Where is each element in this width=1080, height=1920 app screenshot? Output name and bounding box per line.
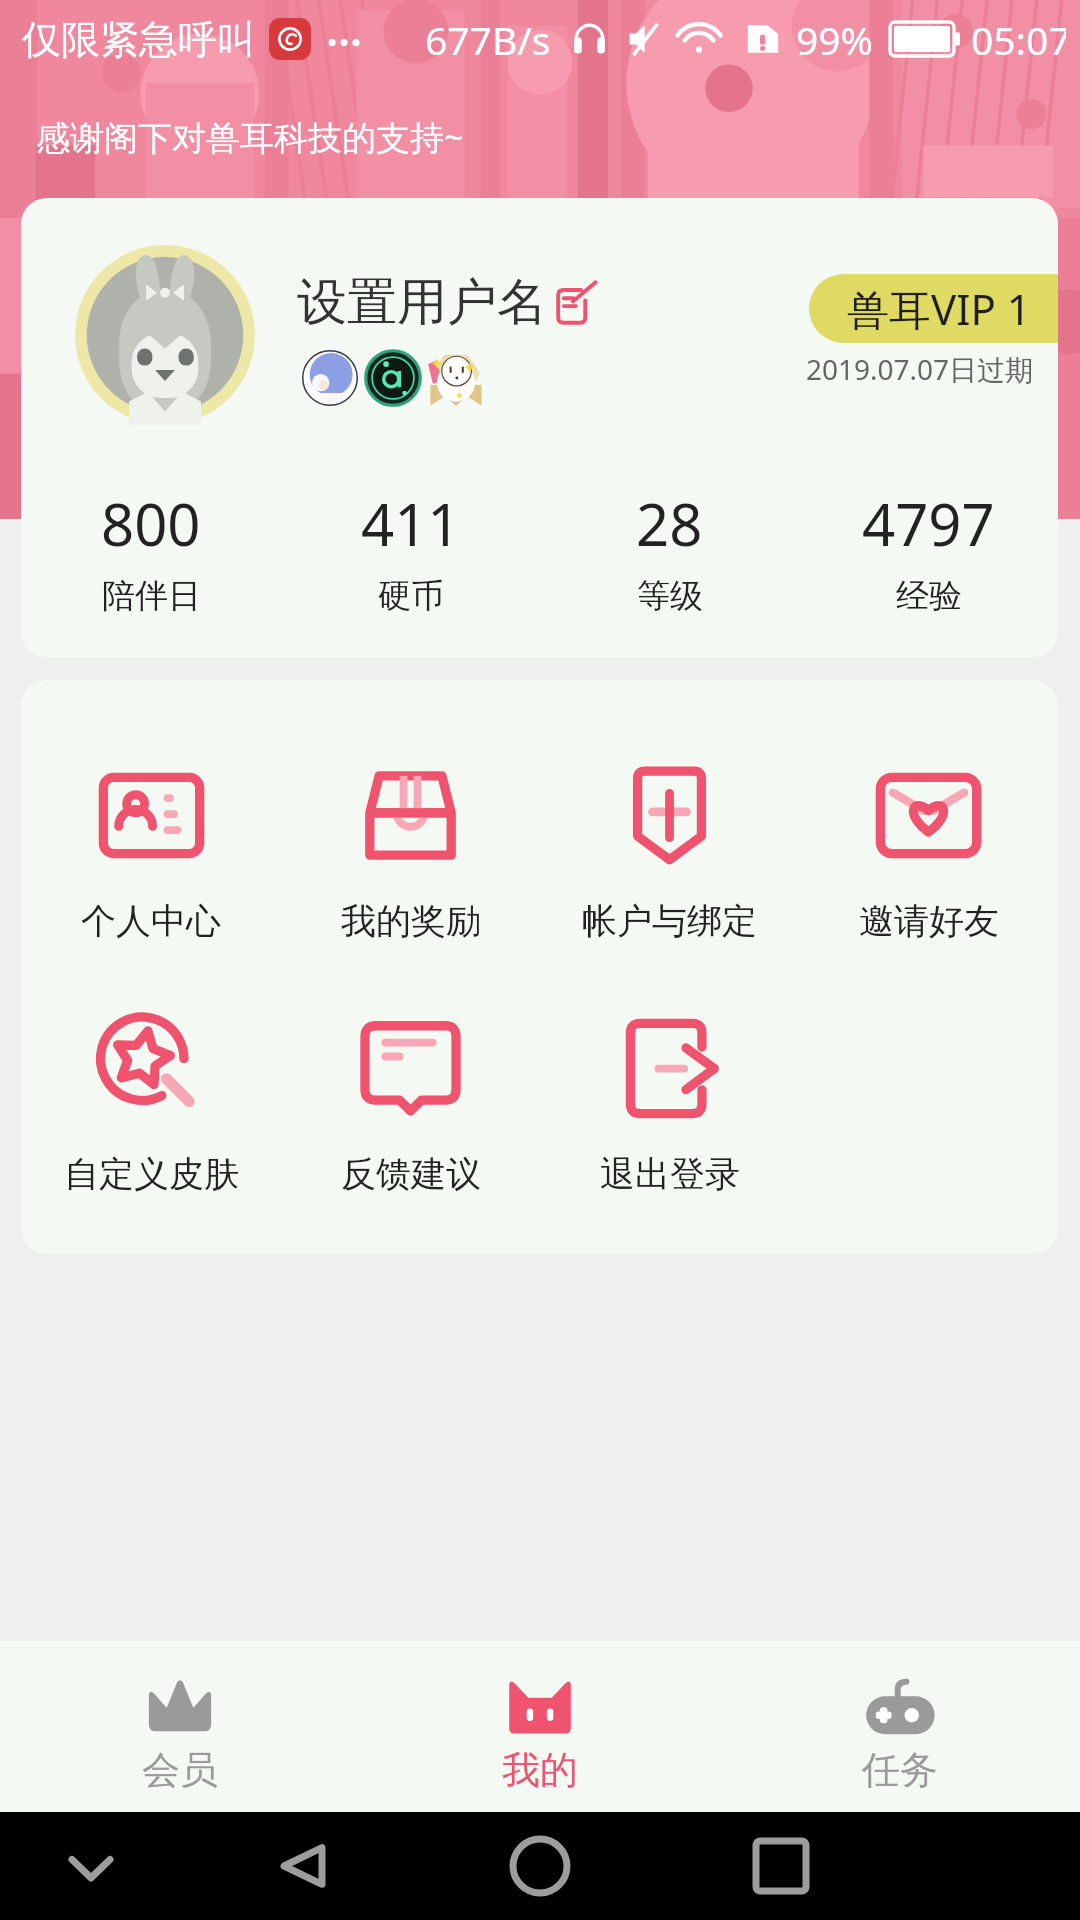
staticText: 411: [361, 484, 461, 563]
button[interactable]: 28: [540, 484, 799, 617]
staticText: 任务: [862, 1746, 938, 1794]
button[interactable]: 反馈建议: [281, 1017, 540, 1196]
staticText: 我的奖励: [341, 899, 481, 943]
staticText: 800: [101, 484, 201, 563]
button[interactable]: 4797: [799, 484, 1058, 617]
staticText: 仅限紧急呼叫: [22, 15, 256, 64]
button[interactable]: Avatar: [75, 245, 255, 425]
button[interactable]: 会员: [0, 1641, 360, 1812]
button[interactable]: 我的奖励: [281, 764, 540, 943]
staticText: 4797: [862, 484, 995, 563]
staticText: 我的: [502, 1746, 578, 1794]
staticText: 感谢阁下对兽耳科技的支持~: [36, 114, 464, 160]
button[interactable]: Badge 2: [364, 349, 422, 407]
staticText: 邀请好友: [859, 899, 999, 943]
staticText: 677B/s: [425, 13, 551, 66]
button[interactable]: Badge 3: [427, 349, 485, 407]
button[interactable]: 411: [281, 484, 540, 617]
button[interactable]: 我的: [360, 1641, 720, 1812]
staticText: 退出登录: [600, 1152, 740, 1196]
staticText: 兽耳VIP 1: [847, 280, 1031, 337]
button[interactable]: 个人中心: [21, 764, 281, 943]
staticText: 硬币: [378, 575, 444, 617]
button[interactable]: 帐户与绑定: [540, 764, 799, 943]
button[interactable]: 邀请好友: [799, 764, 1058, 943]
staticText: 帐户与绑定: [582, 899, 757, 943]
button[interactable]: 退出登录: [540, 1017, 799, 1196]
button[interactable]: 自定义皮肤: [21, 1017, 281, 1196]
staticText: 个人中心: [81, 899, 221, 943]
staticText: 反馈建议: [341, 1152, 481, 1196]
staticText: 会员: [142, 1746, 218, 1794]
button[interactable]: Badge 1: [301, 349, 359, 407]
staticText: 陪伴日: [102, 575, 201, 617]
staticText: 28: [636, 484, 703, 563]
staticText: 设置用户名: [297, 271, 547, 334]
staticText: 2019.07.07日过期: [806, 350, 1034, 388]
staticText: 99%: [796, 13, 874, 66]
staticText: 经验: [896, 575, 962, 617]
button[interactable]: 800: [21, 484, 281, 617]
staticText: 05:07: [971, 13, 1066, 66]
button[interactable]: 任务: [720, 1641, 1080, 1812]
button[interactable]: 兽耳VIP 1: [809, 274, 1058, 343]
button[interactable]: Edit name: [553, 277, 605, 329]
staticText: 等级: [637, 575, 703, 617]
staticText: 自定义皮肤: [64, 1152, 239, 1196]
